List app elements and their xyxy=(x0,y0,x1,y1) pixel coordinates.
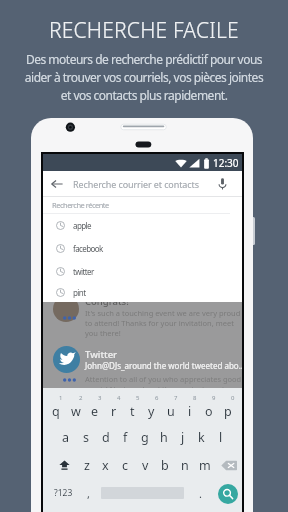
button[interactable]: l xyxy=(211,423,230,451)
staticText: e xyxy=(91,403,99,420)
staticText: w xyxy=(71,403,81,420)
staticText: z xyxy=(84,457,90,474)
button[interactable]: Shift xyxy=(53,451,75,479)
button[interactable]: n xyxy=(175,451,195,479)
staticText: x xyxy=(102,457,109,474)
staticText: 9 xyxy=(212,394,216,402)
staticText: Congrats! xyxy=(85,295,129,308)
button[interactable]: twitter xyxy=(43,260,242,283)
button[interactable]: ?123 xyxy=(47,479,79,507)
staticText: r xyxy=(111,403,117,420)
staticText: b xyxy=(161,457,169,474)
staticText: i xyxy=(188,403,192,420)
staticText: 12:30 xyxy=(213,156,239,170)
button[interactable]: facebook xyxy=(43,237,242,260)
staticText: . xyxy=(199,486,202,501)
staticText: 8 xyxy=(193,394,197,402)
staticText: Des moteurs de recherche prédictif pour … xyxy=(20,51,268,104)
staticText: 6 xyxy=(155,394,159,402)
button[interactable]: x xyxy=(96,451,115,479)
staticText: 1 xyxy=(59,394,63,402)
button[interactable]: 4 xyxy=(104,395,123,423)
staticText: a xyxy=(62,429,70,446)
button[interactable]: k xyxy=(192,423,211,451)
staticText: Attention to all of you who appreciates … xyxy=(85,374,242,388)
button[interactable]: m xyxy=(195,451,215,479)
staticText: 5 xyxy=(136,394,140,402)
staticText: s xyxy=(83,429,89,446)
button[interactable]: 6 xyxy=(142,395,161,423)
button[interactable]: Space xyxy=(97,479,187,507)
staticText: facebook xyxy=(73,243,103,254)
button[interactable]: Backspace xyxy=(216,451,242,479)
staticText: 4 xyxy=(117,394,121,402)
staticText: 0 xyxy=(231,394,235,402)
staticText: u xyxy=(167,403,175,420)
staticText: twitter xyxy=(73,266,94,277)
staticText: 2 xyxy=(79,394,83,402)
staticText: v xyxy=(142,457,149,474)
staticText: John@DJs_around the world tweeted abo... xyxy=(85,360,242,371)
button[interactable]: z xyxy=(77,451,96,479)
staticText: y xyxy=(148,403,155,420)
button[interactable]: Search xyxy=(218,484,238,504)
staticText: It's such a touching event we are very p… xyxy=(85,308,241,338)
button[interactable]: Back xyxy=(48,175,66,193)
staticText: Recherche courrier et contacts xyxy=(73,178,199,190)
button[interactable]: f xyxy=(116,423,135,451)
button[interactable]: Voice search xyxy=(213,175,231,193)
button[interactable]: a xyxy=(56,423,76,451)
button[interactable]: . xyxy=(190,479,210,507)
button[interactable]: h xyxy=(154,423,173,451)
button[interactable]: g xyxy=(135,423,154,451)
staticText: l xyxy=(219,429,223,446)
button[interactable]: d xyxy=(96,423,116,451)
button[interactable]: 1 xyxy=(46,395,66,423)
button[interactable]: v xyxy=(135,451,155,479)
staticText: c xyxy=(122,457,129,474)
button[interactable]: , xyxy=(79,479,97,507)
button[interactable]: c xyxy=(115,451,135,479)
staticText: h xyxy=(160,429,168,446)
staticText: j xyxy=(181,429,185,446)
staticText: k xyxy=(198,429,205,446)
staticText: Twitter xyxy=(85,348,118,361)
staticText: 7 xyxy=(174,394,178,402)
staticText: t xyxy=(130,403,135,420)
button[interactable]: 5 xyxy=(123,395,142,423)
button[interactable]: 8 xyxy=(180,395,199,423)
staticText: ?123 xyxy=(54,487,73,499)
staticText: o xyxy=(205,403,213,420)
button[interactable]: b xyxy=(155,451,175,479)
button[interactable]: 9 xyxy=(199,395,218,423)
staticText: RECHERCHE FACILE xyxy=(49,16,239,45)
button[interactable]: 2 xyxy=(66,395,85,423)
button[interactable]: 7 xyxy=(161,395,180,423)
staticText: pint xyxy=(73,287,86,298)
button[interactable]: apple xyxy=(43,214,242,237)
button[interactable]: 0 xyxy=(218,395,237,423)
staticText: n xyxy=(181,457,189,474)
staticText: apple xyxy=(73,220,91,231)
button[interactable]: j xyxy=(173,423,192,451)
staticText: q xyxy=(52,403,60,420)
staticText: Recherche récente xyxy=(52,200,109,210)
staticText: g xyxy=(141,429,149,446)
button[interactable]: 3 xyxy=(85,395,104,423)
button[interactable]: pint xyxy=(43,283,242,302)
staticText: f xyxy=(123,429,128,446)
staticText: m xyxy=(199,457,211,474)
staticText: d xyxy=(102,429,110,446)
staticText: p xyxy=(224,403,232,420)
staticText: , xyxy=(87,486,90,501)
staticText: 3 xyxy=(98,394,102,402)
button[interactable]: s xyxy=(76,423,96,451)
